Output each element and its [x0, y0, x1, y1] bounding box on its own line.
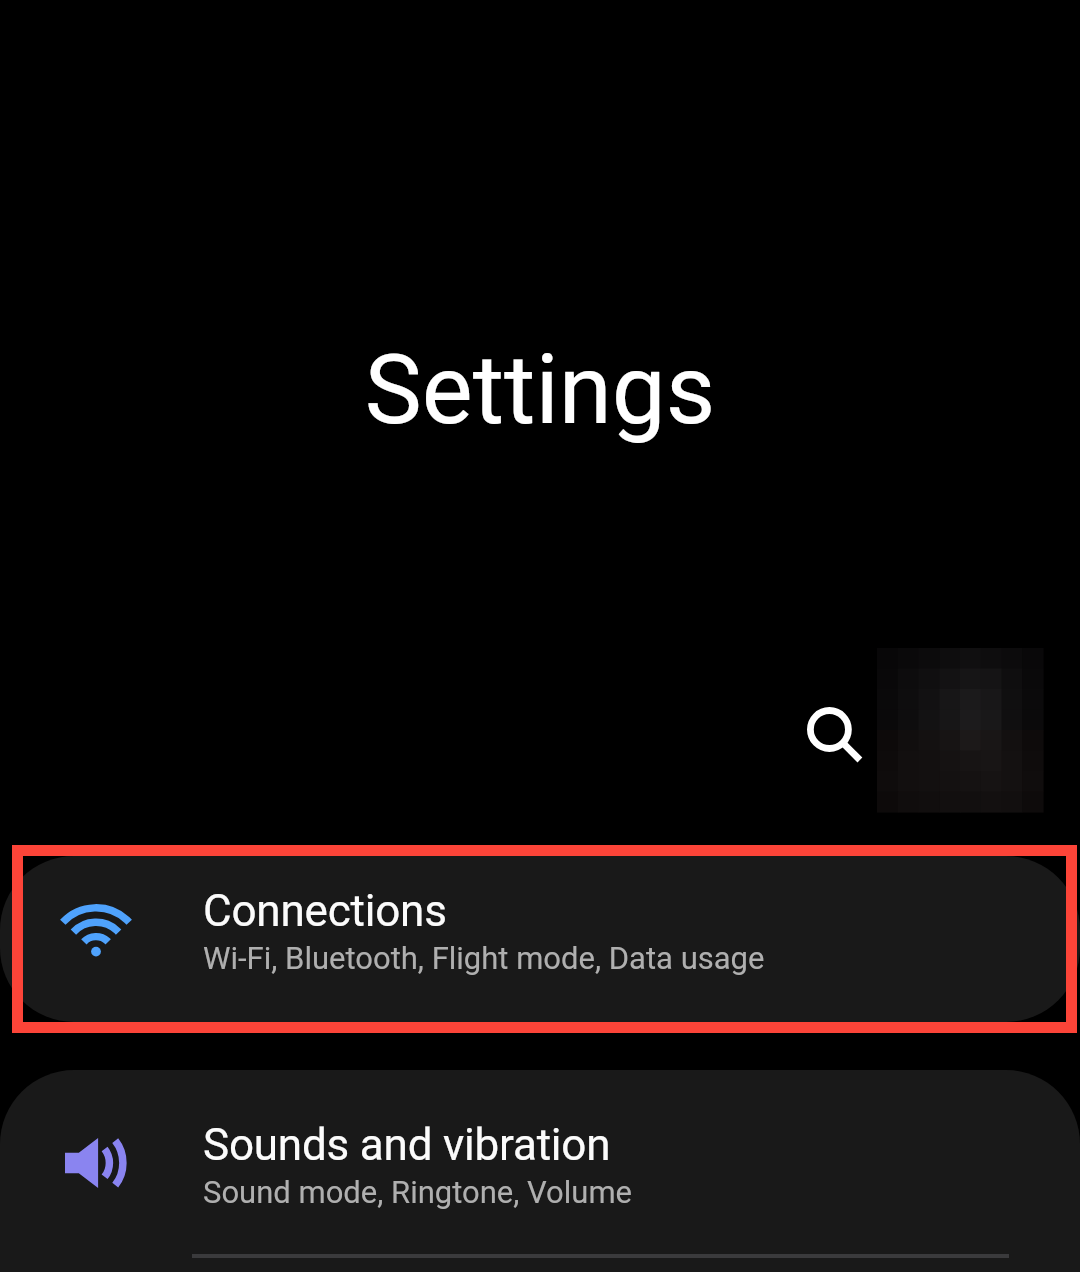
staticText: Connections [203, 885, 447, 937]
button[interactable]: Account [877, 648, 1043, 812]
staticText: Settings [0, 334, 1080, 447]
staticText: Wi-Fi, Bluetooth, Flight mode, Data usag… [203, 940, 765, 976]
button[interactable]: Search [775, 676, 883, 784]
button[interactable]: Sounds and vibration [0, 1070, 1080, 1254]
staticText: Sound mode, Ringtone, Volume [203, 1174, 633, 1210]
staticText: Sounds and vibration [203, 1119, 611, 1171]
button[interactable]: Connections [0, 856, 1080, 1022]
